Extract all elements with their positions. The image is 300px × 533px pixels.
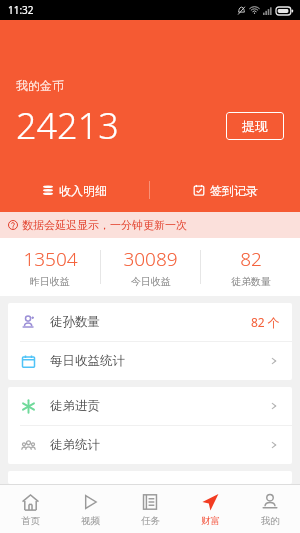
button[interactable]: 徒孙数量: [8, 303, 292, 341]
button[interactable]: 每日收益统计: [8, 342, 292, 380]
button[interactable]: 徒弟统计: [8, 426, 292, 464]
button[interactable]: 签到记录: [150, 172, 300, 208]
staticText: 首页: [21, 515, 40, 527]
staticText: 数据会延迟显示，一分钟更新一次: [22, 218, 187, 232]
button[interactable]: 82: [201, 246, 300, 288]
staticText: 徒弟数量: [231, 275, 271, 288]
button[interactable]: 徒弟进贡: [8, 387, 292, 425]
staticText: 我的: [261, 515, 280, 527]
button[interactable]: 收入明细: [0, 172, 149, 208]
staticText: 财富: [201, 515, 220, 527]
staticText: 视频: [81, 515, 100, 527]
button[interactable]: 30089: [101, 246, 200, 288]
staticText: 签到记录: [210, 183, 258, 198]
button[interactable]: 任务: [120, 485, 180, 533]
button[interactable]: 财富: [180, 485, 240, 533]
other: Open: [268, 400, 280, 412]
staticText: 徒弟统计: [50, 437, 100, 453]
staticText: 今日收益: [131, 275, 171, 288]
staticText: 收入明细: [59, 183, 107, 198]
staticText: 13504: [23, 246, 78, 272]
staticText: 82 个: [251, 314, 280, 330]
button[interactable]: 首页: [0, 485, 60, 533]
button[interactable]: 我的: [240, 485, 300, 533]
staticText: 徒孙数量: [50, 314, 100, 330]
staticText: 我的金币: [16, 78, 64, 93]
staticText: 徒弟进贡: [50, 398, 100, 414]
staticText: 11:32: [8, 3, 34, 17]
staticText: 昨日收益: [30, 275, 70, 288]
button[interactable]: 13504: [0, 246, 100, 288]
staticText: 82: [240, 246, 262, 272]
staticText: 任务: [141, 515, 160, 527]
other: Open: [268, 355, 280, 367]
staticText: 30089: [123, 246, 178, 272]
staticText: 24213: [16, 101, 119, 150]
button[interactable]: 提现: [226, 112, 284, 140]
button[interactable]: 视频: [60, 485, 120, 533]
staticText: 提现: [242, 118, 268, 134]
staticText: 每日收益统计: [50, 353, 125, 369]
other: Open: [268, 439, 280, 451]
